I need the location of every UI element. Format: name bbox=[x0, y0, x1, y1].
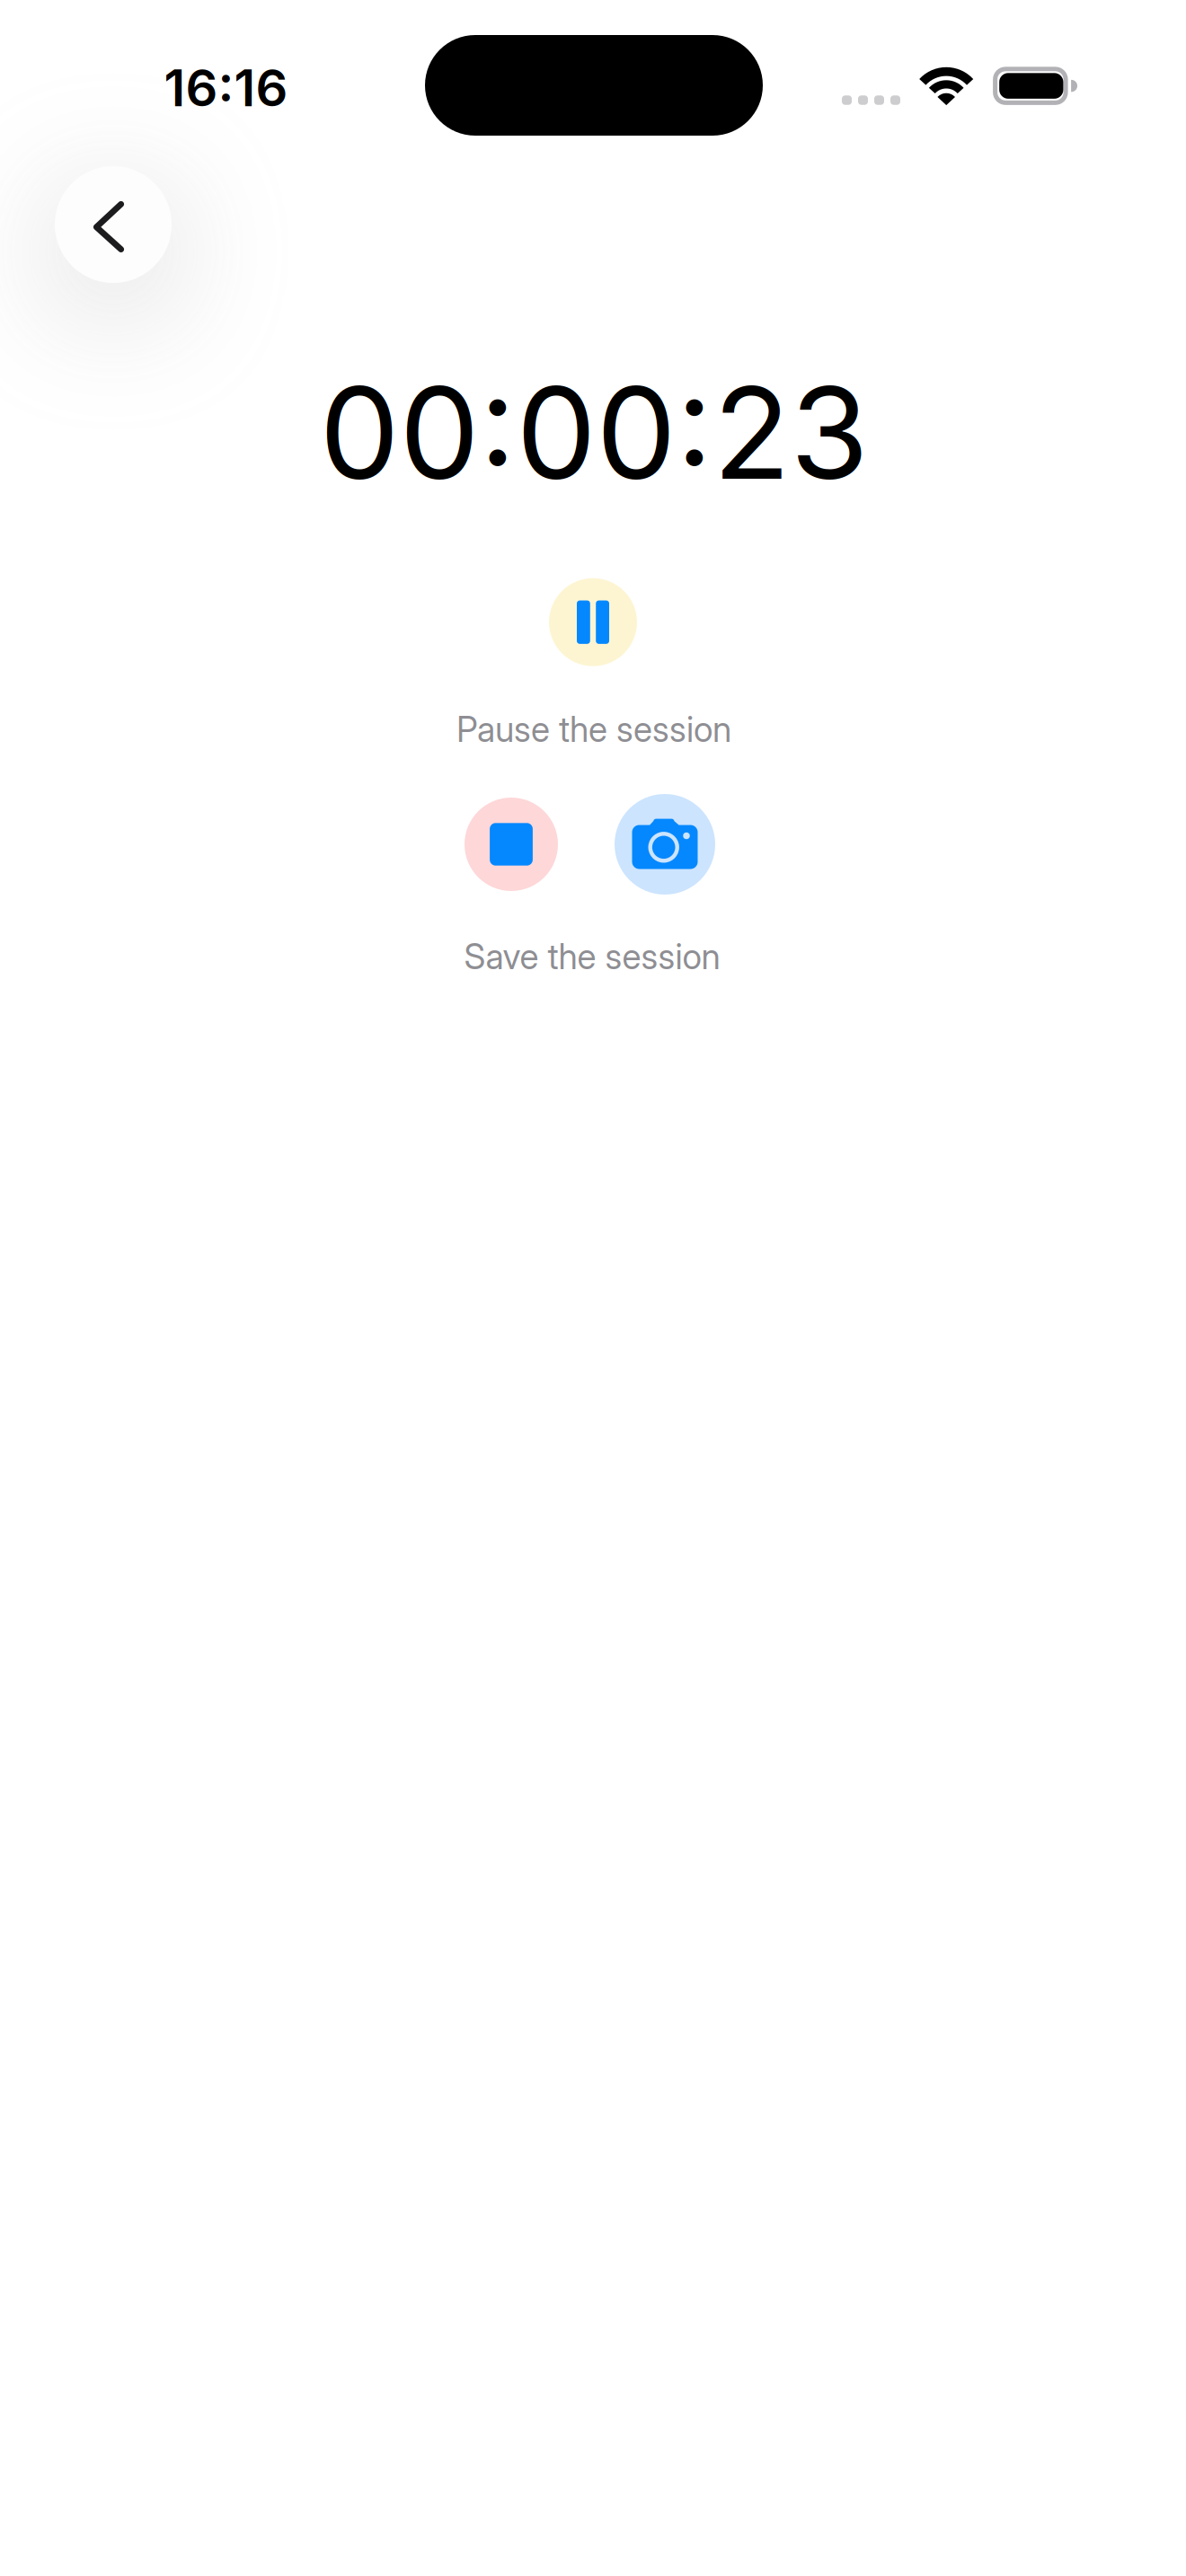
staticText: 00:00:23 bbox=[319, 356, 868, 509]
button[interactable]: Pause bbox=[549, 578, 637, 666]
button[interactable]: Take photo bbox=[615, 794, 715, 895]
staticText: Save the session bbox=[464, 936, 720, 977]
button[interactable]: Back bbox=[55, 166, 172, 283]
button[interactable]: Stop bbox=[465, 798, 558, 891]
staticText: Pause the session bbox=[456, 708, 731, 750]
staticText: 16:16 bbox=[164, 58, 288, 118]
